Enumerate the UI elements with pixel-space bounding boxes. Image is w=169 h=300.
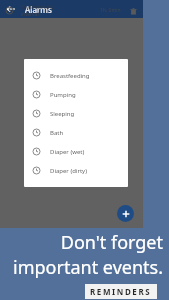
- staticText: Breastfeeding: [50, 72, 90, 80]
- button[interactable]: Delete alarm: [128, 6, 138, 16]
- staticText: Alarms: [25, 4, 52, 15]
- button[interactable]: Bath: [24, 123, 128, 142]
- button[interactable]: Pumping: [24, 85, 128, 104]
- staticText: Bath: [50, 129, 64, 137]
- staticText: Pumping: [50, 91, 76, 99]
- staticText: 1h, 0min: [100, 7, 121, 14]
- button[interactable]: Sleeping: [24, 104, 128, 123]
- button[interactable]: Diaper (dirty): [24, 161, 128, 180]
- staticText: Breastfeeding: [21, 4, 54, 11]
- button[interactable]: Breastfeeding: [0, 0, 143, 21]
- staticText: Diaper (dirty): [50, 167, 87, 175]
- button[interactable]: REMINDERS: [85, 284, 157, 299]
- staticText: important events.: [13, 255, 163, 280]
- staticText: REMINDERS: [90, 286, 152, 297]
- button[interactable]: Back: [5, 3, 17, 15]
- button[interactable]: Breastfeeding: [24, 66, 128, 85]
- button[interactable]: Add alarm: [117, 205, 134, 222]
- staticText: Sleeping: [50, 110, 75, 118]
- staticText: Don't forget: [60, 230, 163, 255]
- staticText: Diaper (wet): [50, 148, 85, 156]
- staticText: interval: [21, 11, 39, 18]
- button[interactable]: Diaper (wet): [24, 142, 128, 161]
